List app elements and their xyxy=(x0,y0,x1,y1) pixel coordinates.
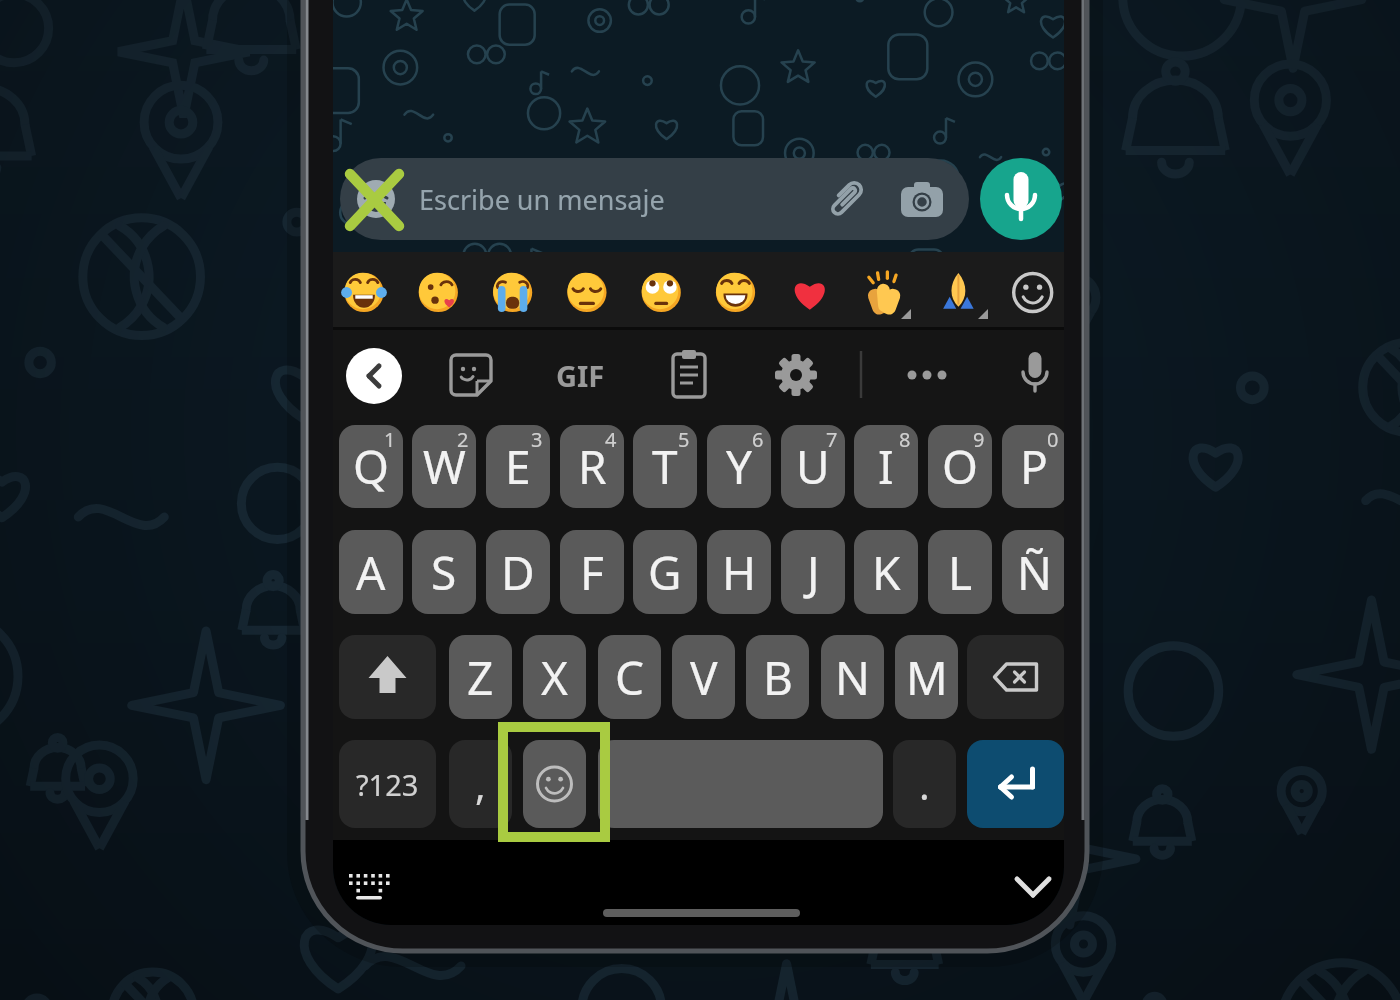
button[interactable] xyxy=(341,862,397,910)
button[interactable] xyxy=(661,347,717,403)
button[interactable]: O xyxy=(928,425,992,508)
button[interactable]: D xyxy=(486,530,550,614)
button[interactable] xyxy=(1007,347,1063,403)
button[interactable]: P xyxy=(1002,425,1064,508)
staticText: W xyxy=(423,435,466,498)
staticText: I xyxy=(878,435,894,498)
button[interactable]: H xyxy=(707,530,771,614)
button[interactable] xyxy=(768,347,824,403)
button[interactable]: B xyxy=(746,635,809,719)
staticText: O xyxy=(942,435,978,498)
staticText: Q xyxy=(353,435,389,498)
button[interactable]: A xyxy=(339,530,403,614)
button[interactable]: R xyxy=(560,425,624,508)
staticText: B xyxy=(763,646,793,709)
button[interactable] xyxy=(336,264,392,320)
button[interactable] xyxy=(782,264,838,320)
button[interactable]: S xyxy=(412,530,476,614)
button[interactable]: Q xyxy=(339,425,403,508)
staticText: Y xyxy=(726,435,753,498)
button[interactable] xyxy=(339,635,436,719)
button[interactable] xyxy=(598,740,883,828)
button[interactable]: T xyxy=(633,425,697,508)
staticText: T xyxy=(652,435,678,498)
button[interactable] xyxy=(856,264,912,320)
button[interactable]: U xyxy=(781,425,845,508)
button[interactable]: E xyxy=(486,425,550,508)
staticText: X xyxy=(541,646,568,709)
staticText: GIF xyxy=(556,356,605,395)
button[interactable] xyxy=(443,347,499,403)
staticText: 2 xyxy=(457,426,469,453)
button[interactable]: W xyxy=(412,425,476,508)
button[interactable]: J xyxy=(781,530,845,614)
button[interactable]: C xyxy=(598,635,661,719)
button[interactable]: . xyxy=(893,740,956,828)
button[interactable]: Ñ xyxy=(1002,530,1064,614)
button[interactable] xyxy=(1005,862,1061,910)
button[interactable] xyxy=(523,740,586,828)
staticText: 8 xyxy=(899,426,911,453)
staticText: Z xyxy=(467,646,494,709)
staticText: Ñ xyxy=(1017,541,1052,604)
staticText: V xyxy=(690,646,718,709)
button[interactable] xyxy=(980,158,1062,240)
staticText: ?123 xyxy=(356,765,419,804)
staticText: P xyxy=(1020,435,1048,498)
staticText: 9 xyxy=(973,426,985,453)
staticText: K xyxy=(872,541,901,604)
staticText: , xyxy=(475,757,486,811)
staticText: G xyxy=(648,541,682,604)
button[interactable] xyxy=(485,264,541,320)
staticText: M xyxy=(906,646,948,709)
staticText: C xyxy=(615,646,645,709)
button[interactable]: L xyxy=(928,530,992,614)
button[interactable] xyxy=(1005,264,1061,320)
button[interactable]: Escribe un mensaje xyxy=(340,158,969,240)
staticText: J xyxy=(807,541,820,604)
staticText: . xyxy=(919,757,930,811)
button[interactable] xyxy=(899,347,955,403)
staticText: H xyxy=(722,541,757,604)
staticText: S xyxy=(431,541,457,604)
staticText: E xyxy=(505,435,531,498)
button[interactable]: X xyxy=(523,635,586,719)
staticText: 1 xyxy=(384,426,396,453)
staticText: Escribe un mensaje xyxy=(419,181,665,218)
staticText: 0 xyxy=(1047,426,1059,453)
staticText: 7 xyxy=(826,426,838,453)
button[interactable]: ?123 xyxy=(339,740,436,828)
staticText: U xyxy=(796,435,830,498)
staticText: N xyxy=(835,646,870,709)
staticText: A xyxy=(356,541,386,604)
button[interactable]: K xyxy=(854,530,918,614)
button[interactable] xyxy=(930,264,986,320)
staticText: 3 xyxy=(531,426,543,453)
button[interactable]: V xyxy=(672,635,735,719)
button[interactable]: , xyxy=(449,740,512,828)
staticText: F xyxy=(580,541,604,604)
button[interactable]: M xyxy=(895,635,958,719)
button[interactable] xyxy=(708,264,764,320)
staticText: 5 xyxy=(678,426,690,453)
staticText: L xyxy=(948,541,973,604)
button[interactable] xyxy=(410,264,466,320)
staticText: 4 xyxy=(605,426,617,453)
staticText: 6 xyxy=(752,426,764,453)
staticText: R xyxy=(578,435,607,498)
button[interactable] xyxy=(633,264,689,320)
button[interactable]: Z xyxy=(449,635,512,719)
staticText: D xyxy=(501,541,535,604)
button[interactable] xyxy=(967,635,1064,719)
button[interactable] xyxy=(346,348,402,404)
button[interactable]: GIF xyxy=(552,347,608,403)
button[interactable]: N xyxy=(821,635,884,719)
button[interactable]: I xyxy=(854,425,918,508)
button[interactable] xyxy=(559,264,615,320)
button[interactable]: G xyxy=(633,530,697,614)
button[interactable] xyxy=(967,740,1064,828)
button[interactable]: Y xyxy=(707,425,771,508)
button[interactable]: F xyxy=(560,530,624,614)
